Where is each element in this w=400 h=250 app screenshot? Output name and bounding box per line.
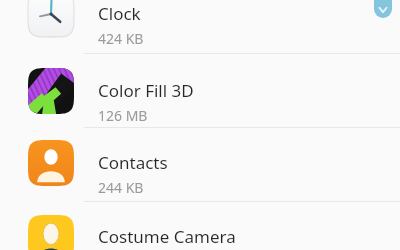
button[interactable]: Contacts — [0, 127, 400, 201]
staticText: Costume Camera — [98, 225, 236, 248]
staticText: Clock — [98, 2, 141, 25]
staticText: Contacts — [98, 151, 168, 174]
staticText: 126 MB — [98, 106, 148, 125]
button[interactable]: Costume Camera — [0, 201, 400, 250]
staticText: 424 KB — [98, 29, 144, 48]
button[interactable]: Color Fill 3D — [0, 53, 400, 127]
staticText: Color Fill 3D — [98, 79, 194, 102]
button[interactable]: Clock — [0, 0, 400, 53]
staticText: 244 KB — [98, 178, 144, 197]
button[interactable]: Scroll — [374, 0, 392, 18]
